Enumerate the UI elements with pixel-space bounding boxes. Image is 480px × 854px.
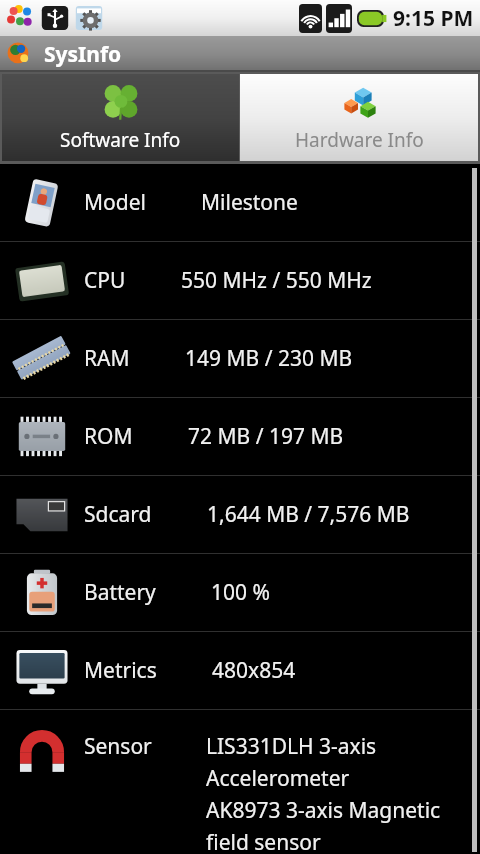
- staticText: AK8973 3-axis Magnetic: [206, 796, 441, 825]
- staticText: 149 MB / 230 MB: [185, 344, 353, 373]
- staticText: RAM: [84, 344, 130, 373]
- button[interactable]: Battery: [0, 554, 480, 631]
- other: App icon: [6, 41, 32, 67]
- button[interactable]: CPU: [0, 242, 480, 319]
- staticText: Milestone: [201, 188, 298, 217]
- button[interactable]: ROM: [0, 398, 480, 475]
- staticText: Metrics: [84, 656, 157, 685]
- staticText: field sensor: [206, 828, 321, 850]
- staticText: 9:15 PM: [393, 4, 474, 33]
- button[interactable]: Metrics: [0, 632, 480, 709]
- staticText: 100 %: [211, 578, 270, 607]
- staticText: Accelerometer: [206, 764, 350, 793]
- staticText: Sdcard: [84, 500, 152, 529]
- staticText: LIS331DLH 3-axis: [206, 732, 377, 761]
- staticText: SysInfo: [44, 40, 122, 69]
- staticText: 480x854: [212, 656, 296, 685]
- button[interactable]: RAM: [0, 320, 480, 397]
- button[interactable]: Software Info: [2, 74, 239, 161]
- staticText: Battery: [84, 578, 156, 607]
- staticText: ROM: [84, 422, 133, 451]
- staticText: Model: [84, 188, 146, 217]
- staticText: Sensor: [84, 732, 152, 761]
- button[interactable]: Sensor: [0, 710, 480, 850]
- staticText: 72 MB / 197 MB: [188, 422, 344, 451]
- button[interactable]: Hardware Info: [240, 74, 478, 161]
- staticText: Software Info: [60, 127, 181, 153]
- button[interactable]: Sdcard: [0, 476, 480, 553]
- button[interactable]: Model: [0, 164, 480, 241]
- staticText: Hardware Info: [295, 127, 424, 153]
- staticText: CPU: [84, 266, 126, 295]
- staticText: 550 MHz / 550 MHz: [181, 266, 372, 295]
- staticText: 1,644 MB / 7,576 MB: [207, 500, 410, 529]
